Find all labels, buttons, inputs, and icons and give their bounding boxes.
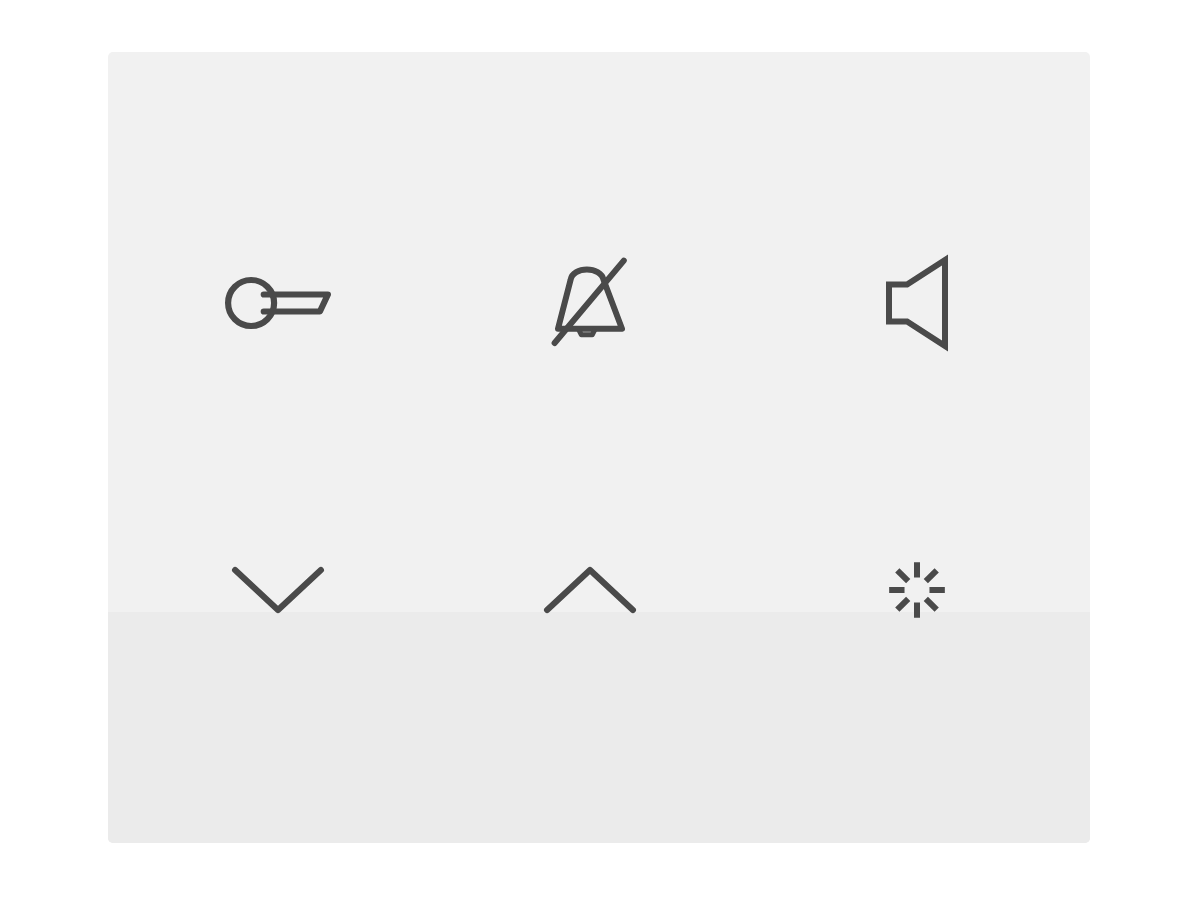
button[interactable]: Blinds down (128, 530, 428, 650)
button[interactable]: Brightness (752, 530, 1082, 650)
button[interactable]: Blinds up (428, 530, 752, 650)
button[interactable]: Volume (752, 233, 1082, 373)
button[interactable]: Silence ringer (428, 233, 752, 373)
button[interactable]: Temperature (128, 233, 428, 373)
